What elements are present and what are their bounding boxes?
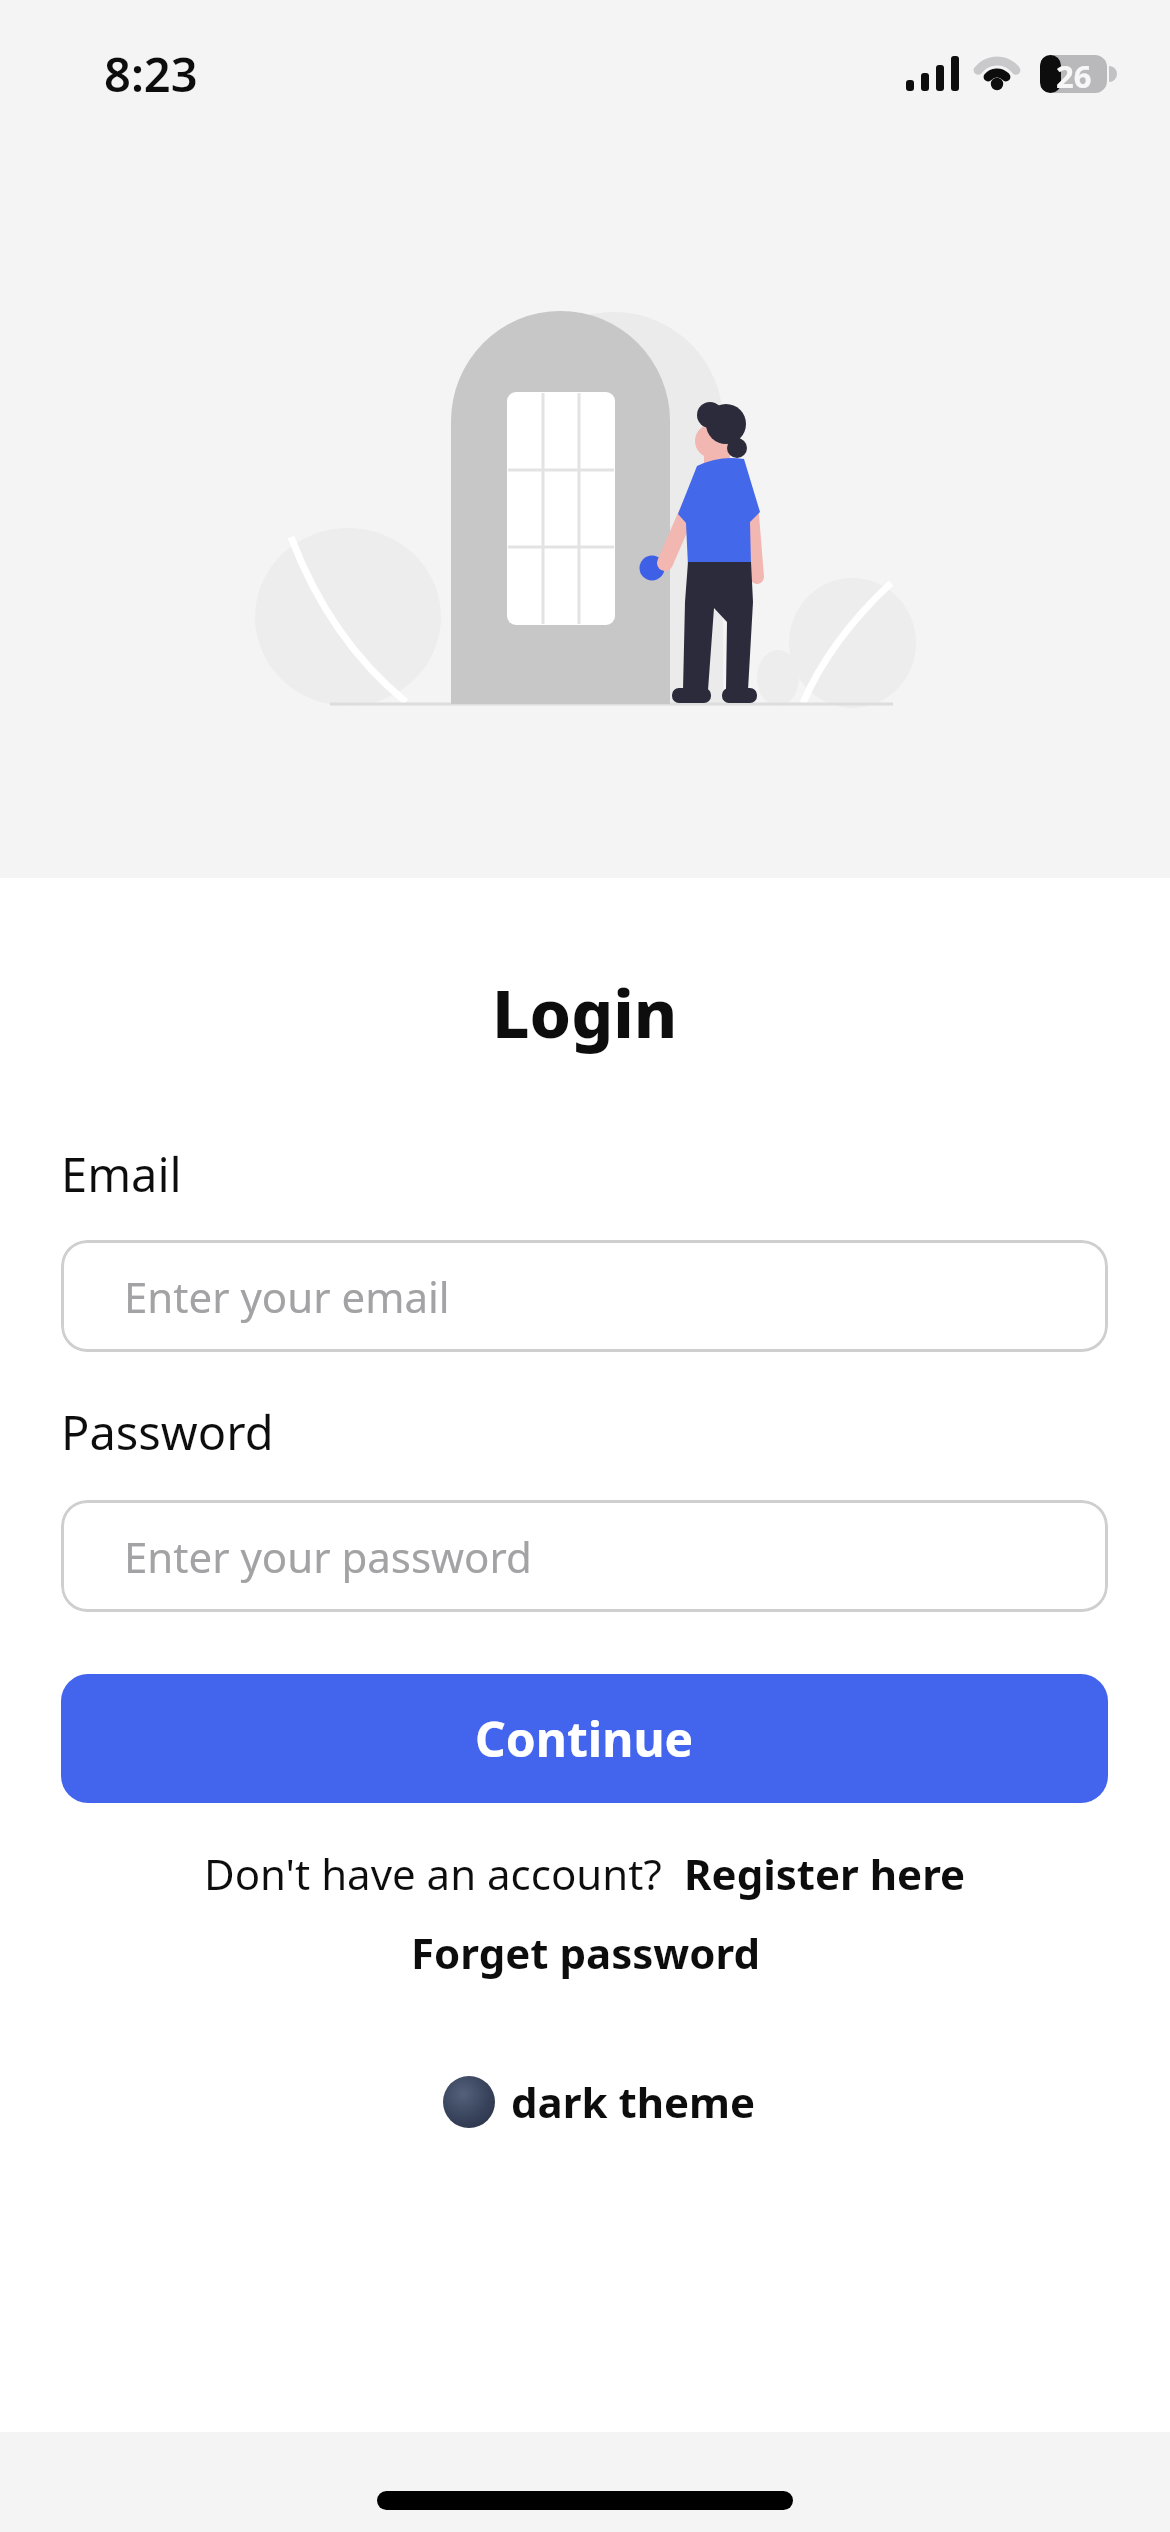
button[interactable]: Continue — [61, 1674, 1108, 1803]
button[interactable]: Enter your password — [61, 1500, 1108, 1612]
button[interactable]: dark theme — [443, 2073, 756, 2130]
staticText: 8:23 — [104, 42, 198, 106]
staticText: Enter your email — [124, 1268, 450, 1325]
staticText: Login — [492, 967, 678, 1057]
staticText: Forget password — [411, 1924, 760, 1981]
staticText: 26 — [1056, 55, 1092, 93]
staticText: Email — [61, 1142, 182, 1206]
staticText: dark theme — [511, 2073, 756, 2130]
button[interactable]: Enter your email — [61, 1240, 1108, 1352]
staticText: Continue — [475, 1706, 694, 1771]
staticText: Register here — [684, 1845, 966, 1902]
button[interactable]: Register here — [684, 1845, 966, 1902]
staticText: Enter your password — [124, 1528, 532, 1585]
staticText: Don't have an account? — [204, 1845, 662, 1902]
button[interactable]: Forget password — [411, 1924, 760, 1981]
staticText: Password — [61, 1400, 274, 1464]
